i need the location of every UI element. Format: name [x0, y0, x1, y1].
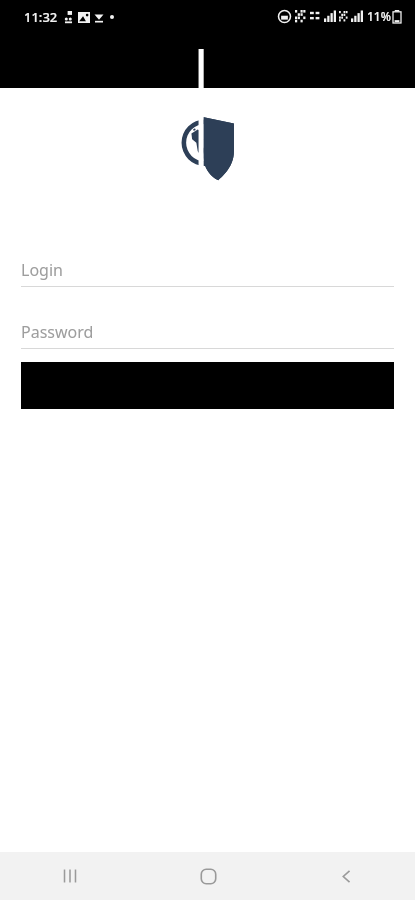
- staticText: Login: [21, 259, 63, 281]
- staticText: 11:32: [24, 8, 58, 26]
- staticText: Password: [21, 321, 94, 343]
- button[interactable]: Recent apps: [0, 852, 139, 900]
- button[interactable]: Password: [21, 321, 394, 349]
- button[interactable]: Home: [139, 852, 277, 900]
- button[interactable]: Login: [21, 259, 394, 287]
- button[interactable]: Back: [277, 852, 415, 900]
- staticText: 11%: [367, 8, 391, 24]
